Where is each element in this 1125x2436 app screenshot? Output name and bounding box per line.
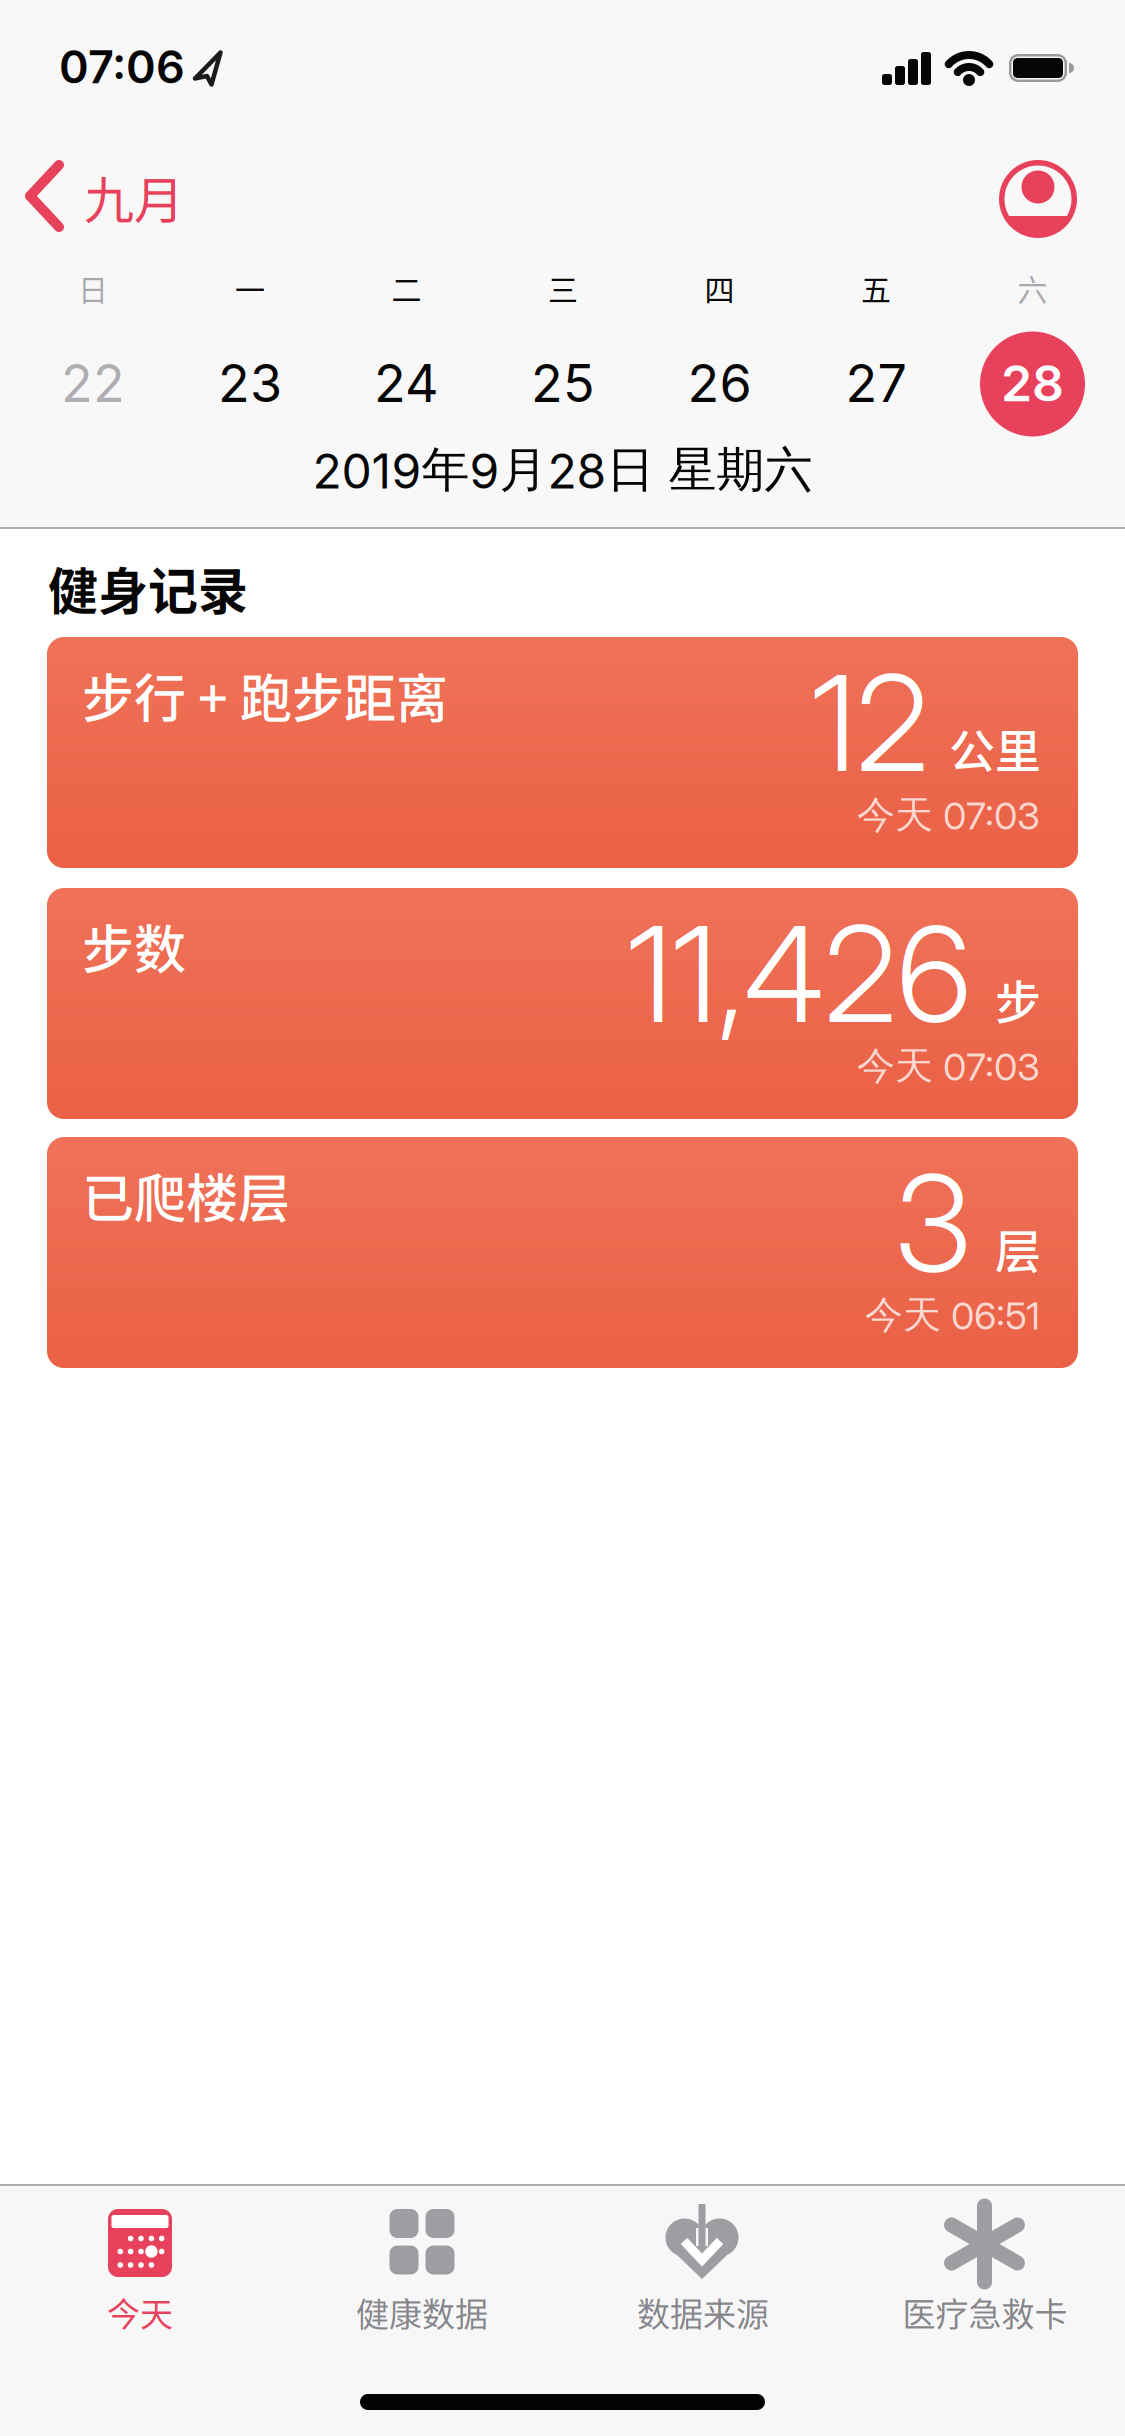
staticText: 3 bbox=[895, 1145, 971, 1301]
staticText: 今天 06:51 bbox=[865, 1292, 1040, 1338]
staticText: 步行 + 跑步距离 bbox=[82, 657, 448, 733]
staticText: 三 bbox=[548, 266, 578, 310]
staticText: 日 bbox=[78, 266, 108, 310]
staticText: 24 bbox=[374, 352, 439, 414]
staticText: 公里 bbox=[949, 715, 1041, 781]
staticText: 2019年9月28日 星期六 bbox=[312, 440, 812, 499]
staticText: 二 bbox=[391, 266, 421, 310]
staticText: 医疗急救卡 bbox=[902, 2288, 1067, 2336]
staticText: 步数 bbox=[82, 908, 186, 984]
staticText: 今天 07:03 bbox=[857, 1043, 1040, 1089]
staticText: 已爬楼层 bbox=[82, 1157, 290, 1233]
staticText: 五 bbox=[861, 266, 891, 310]
staticText: 九月 bbox=[84, 161, 184, 233]
staticText: 25 bbox=[531, 352, 595, 414]
staticText: 一 bbox=[235, 266, 265, 310]
staticText: 27 bbox=[845, 352, 906, 414]
staticText: 11,426 bbox=[627, 896, 971, 1052]
staticText: 步 bbox=[995, 966, 1041, 1032]
staticText: 07:06 bbox=[59, 40, 185, 94]
staticText: 健康数据 bbox=[356, 2288, 488, 2336]
staticText: 六 bbox=[1017, 266, 1047, 310]
staticText: 四 bbox=[704, 266, 734, 310]
staticText: 健身记录 bbox=[48, 552, 248, 624]
staticText: 数据来源 bbox=[637, 2288, 769, 2336]
staticText: 12 bbox=[811, 645, 929, 801]
staticText: 今天 07:03 bbox=[857, 792, 1040, 838]
staticText: 层 bbox=[995, 1215, 1041, 1281]
staticText: 22 bbox=[61, 352, 125, 414]
staticText: 26 bbox=[687, 352, 751, 414]
staticText: 今天 bbox=[107, 2288, 173, 2336]
staticText: 23 bbox=[218, 352, 282, 414]
staticText: 28 bbox=[1001, 353, 1064, 412]
